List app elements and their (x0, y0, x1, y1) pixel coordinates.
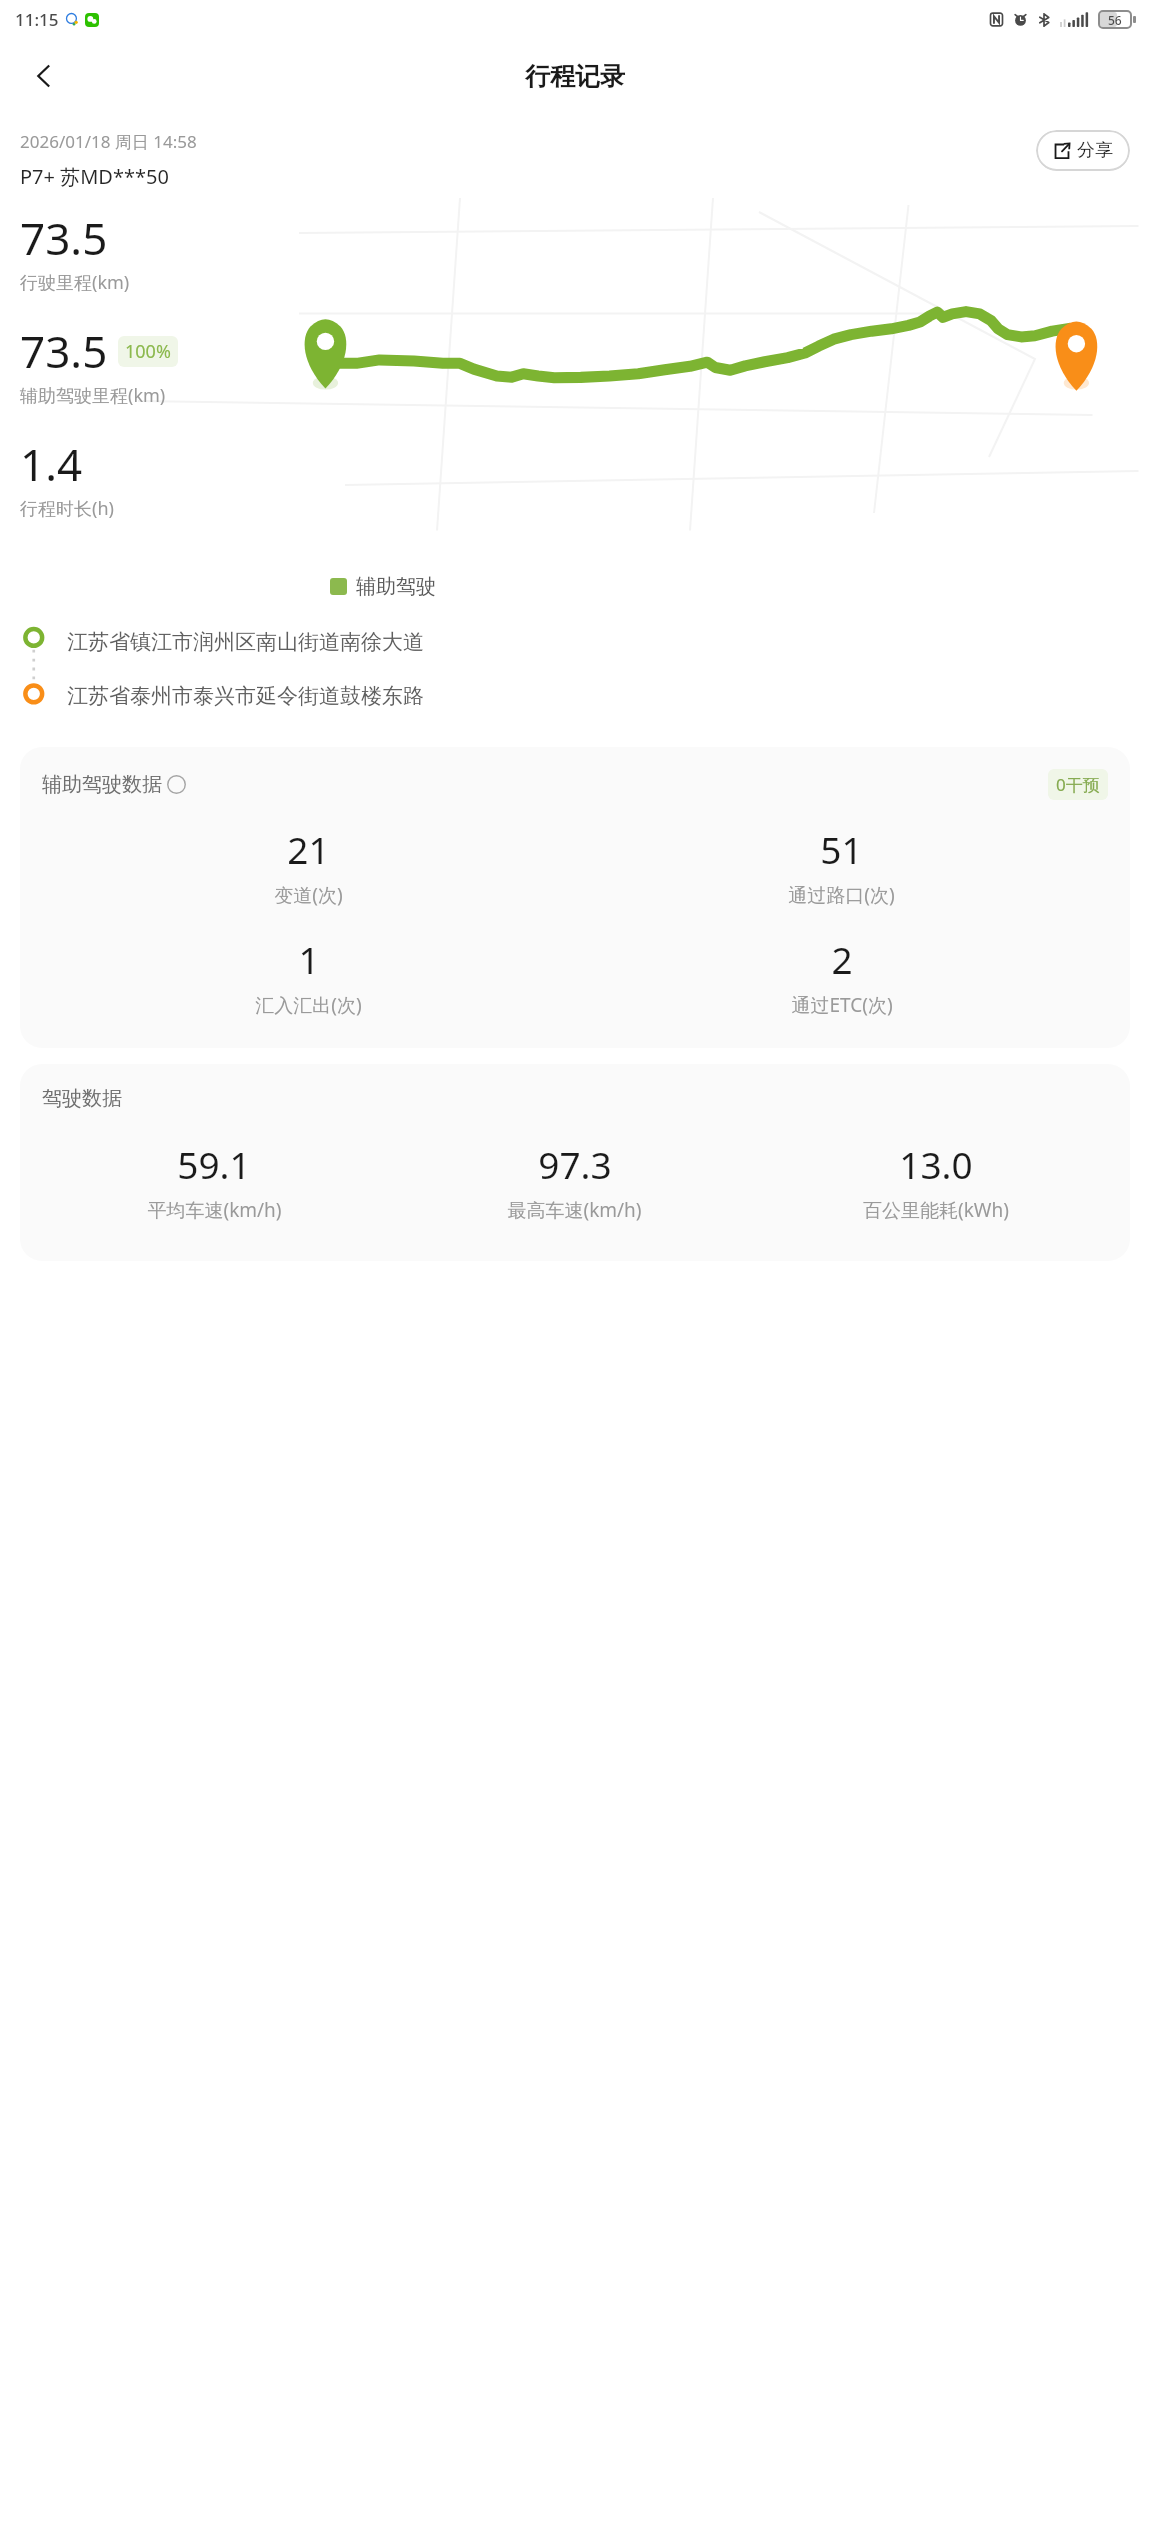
staticText: 97.3 (538, 1139, 612, 1189)
staticText: 59.1 (177, 1139, 251, 1189)
staticText: 百公里能耗(kWh) (863, 1197, 1009, 1223)
button[interactable]: Back (18, 50, 70, 102)
staticText: 通过ETC(次) (791, 992, 893, 1018)
staticText: 辅助驾驶数据 (42, 772, 162, 797)
staticText: 73.5 (20, 208, 108, 268)
staticText: 行程时长(h) (20, 496, 114, 521)
staticText: 2 (831, 934, 853, 984)
staticText: 行程记录 (525, 61, 625, 92)
staticText: 变道(次) (274, 882, 343, 908)
staticText: 13.0 (899, 1139, 973, 1189)
staticText: 1.4 (20, 434, 83, 494)
button[interactable]: 驾驶数据 (20, 1064, 1130, 1261)
staticText: P7+ 苏MD***50 (20, 163, 169, 190)
staticText: 100% (125, 339, 171, 364)
button[interactable]: 辅助驾驶数据 (20, 747, 1130, 1048)
staticText: 江苏省泰州市泰兴市延令街道鼓楼东路 (67, 683, 424, 709)
staticText: 56 (1108, 12, 1122, 28)
staticText: 0干预 (1056, 773, 1100, 796)
staticText: 汇入汇出(次) (255, 992, 362, 1018)
staticText: 1 (298, 934, 320, 984)
staticText: 2026/01/18 周日 14:58 (20, 130, 197, 153)
staticText: 驾驶数据 (42, 1086, 122, 1111)
staticText: 73.5 (20, 321, 108, 381)
staticText: 辅助驾驶里程(km) (20, 383, 166, 408)
staticText: 分享 (1077, 139, 1113, 162)
staticText: 行驶里程(km) (20, 270, 130, 295)
staticText: 51 (820, 824, 863, 874)
staticText: 21 (287, 824, 330, 874)
staticText: 11:15 (15, 8, 59, 31)
staticText: 最高车速(km/h) (507, 1197, 642, 1223)
staticText: 辅助驾驶 (356, 574, 436, 599)
staticText: 江苏省镇江市润州区南山街道南徐大道 (67, 629, 424, 655)
button[interactable]: 分享 (1036, 130, 1130, 171)
staticText: 通过路口(次) (788, 882, 895, 908)
staticText: 平均车速(km/h) (147, 1197, 282, 1223)
